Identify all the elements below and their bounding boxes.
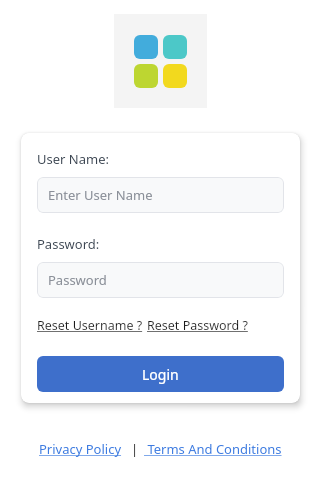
staticText: Enter User Name bbox=[48, 186, 153, 204]
button[interactable]: Login bbox=[37, 356, 284, 392]
staticText: Password bbox=[48, 271, 107, 289]
button[interactable]: Reset Password ? bbox=[147, 317, 248, 334]
staticText: | bbox=[131, 440, 139, 458]
button[interactable]: Privacy Policy bbox=[39, 440, 125, 458]
staticText: Privacy Policy bbox=[39, 440, 125, 458]
staticText: Terms And Conditions bbox=[144, 440, 282, 458]
staticText: User Name: bbox=[37, 150, 109, 168]
button[interactable]: User name input bbox=[37, 177, 284, 213]
staticText: Reset Username ? bbox=[37, 317, 143, 334]
button[interactable]: Reset Username ? bbox=[37, 317, 143, 334]
button[interactable]: Terms And Conditions bbox=[144, 440, 282, 458]
staticText: Login bbox=[142, 365, 179, 384]
staticText: Password: bbox=[37, 235, 100, 253]
staticText: Reset Password ? bbox=[147, 317, 248, 334]
button[interactable]: Password input bbox=[37, 262, 284, 298]
